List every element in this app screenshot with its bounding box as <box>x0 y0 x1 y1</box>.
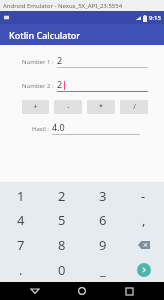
staticText: + <box>33 102 38 112</box>
button[interactable]: 2 <box>57 54 148 68</box>
button[interactable]: Back <box>23 282 47 300</box>
button[interactable]: 2 <box>41 184 82 208</box>
button[interactable]: + <box>22 100 49 114</box>
button[interactable]: 9 <box>82 232 123 257</box>
staticText: / <box>133 102 136 112</box>
staticText: Number 2 : <box>22 82 54 90</box>
button[interactable]: 0 <box>41 257 82 282</box>
staticText: Kotlin Calculator <box>9 29 81 41</box>
staticText: Number 1 : <box>22 58 54 66</box>
button[interactable]: - <box>54 100 82 114</box>
button[interactable]: 8 <box>41 232 82 257</box>
button[interactable]: 3 <box>82 184 123 208</box>
button[interactable]: Enter <box>123 257 164 282</box>
staticText: 9 <box>99 236 107 254</box>
button[interactable]: 5 <box>41 208 82 232</box>
staticText: 3 <box>99 187 107 205</box>
staticText: , <box>142 211 146 229</box>
button[interactable]: _ <box>82 257 123 282</box>
button[interactable]: 6 <box>82 208 123 232</box>
staticText: 7 <box>17 236 25 254</box>
button[interactable]: . <box>0 257 41 282</box>
staticText: - <box>67 102 70 112</box>
staticText: 2 <box>57 54 63 66</box>
staticText: 2 <box>58 187 66 205</box>
button[interactable]: / <box>120 100 148 114</box>
staticText: 6 <box>99 211 107 229</box>
button[interactable]: * <box>87 100 115 114</box>
staticText: _ <box>100 261 106 279</box>
staticText: 8 <box>58 236 66 254</box>
staticText: 0 <box>58 261 66 279</box>
button[interactable]: 4 <box>0 208 41 232</box>
staticText: 9:15 <box>149 14 161 22</box>
button[interactable]: , <box>123 208 164 232</box>
button[interactable]: 7 <box>0 232 41 257</box>
staticText: . <box>19 261 23 279</box>
button[interactable]: 1 <box>0 184 41 208</box>
staticText: 1 <box>17 187 25 205</box>
staticText: Hasil : <box>32 125 49 133</box>
staticText: Android Emulator - Nexus_5X_API_23:5554 <box>3 2 123 10</box>
staticText: * <box>99 102 103 112</box>
button[interactable]: - <box>123 184 164 208</box>
button[interactable]: 2 <box>57 78 148 92</box>
staticText: 4.0 <box>52 121 65 133</box>
button[interactable]: Backspace <box>123 232 164 257</box>
button[interactable]: Home <box>70 282 94 300</box>
button[interactable]: Recent apps <box>117 282 141 300</box>
staticText: 5 <box>58 211 66 229</box>
staticText: - <box>141 187 146 205</box>
staticText: 4 <box>17 211 25 229</box>
staticText: 2 <box>57 78 63 90</box>
